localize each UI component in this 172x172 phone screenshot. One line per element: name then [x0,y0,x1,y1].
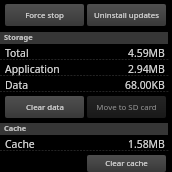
button[interactable]: Total [0,44,168,60]
staticText: 68.00KB [125,78,165,92]
button[interactable]: Move to SD card [87,96,166,118]
staticText: Clear data [26,102,64,113]
button[interactable]: Cache [0,135,168,151]
staticText: Force stop [25,10,64,21]
staticText: Cache [5,137,35,151]
staticText: 2.94MB [128,62,165,76]
staticText: Move to SD card [96,102,157,113]
staticText: 1.58MB [128,137,165,151]
staticText: Application [5,62,60,76]
staticText: 4.59MB [128,46,165,60]
staticText: Storage [4,32,33,42]
staticText: Uninstall updates [94,10,159,21]
staticText: Clear cache [105,158,148,169]
button[interactable]: Force stop [5,4,84,26]
staticText: Total [5,46,29,60]
button[interactable]: Uninstall updates [87,4,166,26]
button[interactable]: Data [0,76,168,92]
staticText: Cache [4,123,27,133]
button[interactable]: Clear cache [87,155,166,172]
staticText: Data [5,78,28,92]
button[interactable]: Clear data [5,96,84,118]
button[interactable]: Application [0,60,168,76]
